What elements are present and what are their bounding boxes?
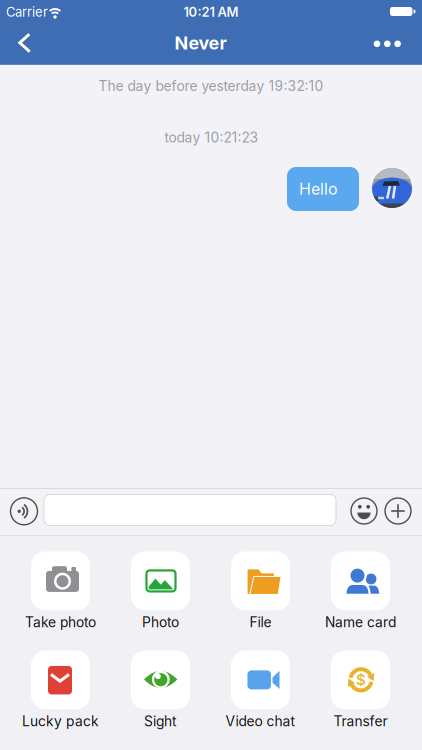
button[interactable] <box>44 494 336 525</box>
staticText: File <box>249 614 271 631</box>
staticText: The day before yesterday 19:32:10 <box>98 78 323 94</box>
staticText: Video chat <box>225 713 295 730</box>
staticText: Name card <box>325 614 396 631</box>
button[interactable]: Name card <box>325 551 396 631</box>
staticText: Never <box>174 32 226 54</box>
staticText: $ <box>356 671 366 689</box>
button[interactable] <box>351 498 377 524</box>
button[interactable] <box>10 498 37 525</box>
staticText: today 10:21:23 <box>164 129 258 146</box>
button[interactable]: Sight <box>131 650 190 730</box>
button[interactable] <box>385 498 411 524</box>
button[interactable]: Photo <box>131 551 190 631</box>
staticText: Carrier <box>6 4 48 20</box>
button[interactable]: File <box>231 551 290 631</box>
button[interactable]: Video chat <box>225 650 295 730</box>
button[interactable]: Lucky pack <box>22 650 99 730</box>
staticText: Transfer <box>333 713 387 730</box>
button[interactable] <box>2 23 46 63</box>
staticText: Sight <box>144 713 177 730</box>
button[interactable]: $ <box>331 650 390 730</box>
button[interactable] <box>365 23 409 63</box>
staticText: Lucky pack <box>22 713 99 730</box>
staticText: Take photo <box>25 614 96 631</box>
staticText: Hello <box>299 179 338 199</box>
staticText: 10:21 AM <box>183 4 238 20</box>
button[interactable]: Take photo <box>25 551 96 631</box>
staticText: Photo <box>142 614 179 631</box>
